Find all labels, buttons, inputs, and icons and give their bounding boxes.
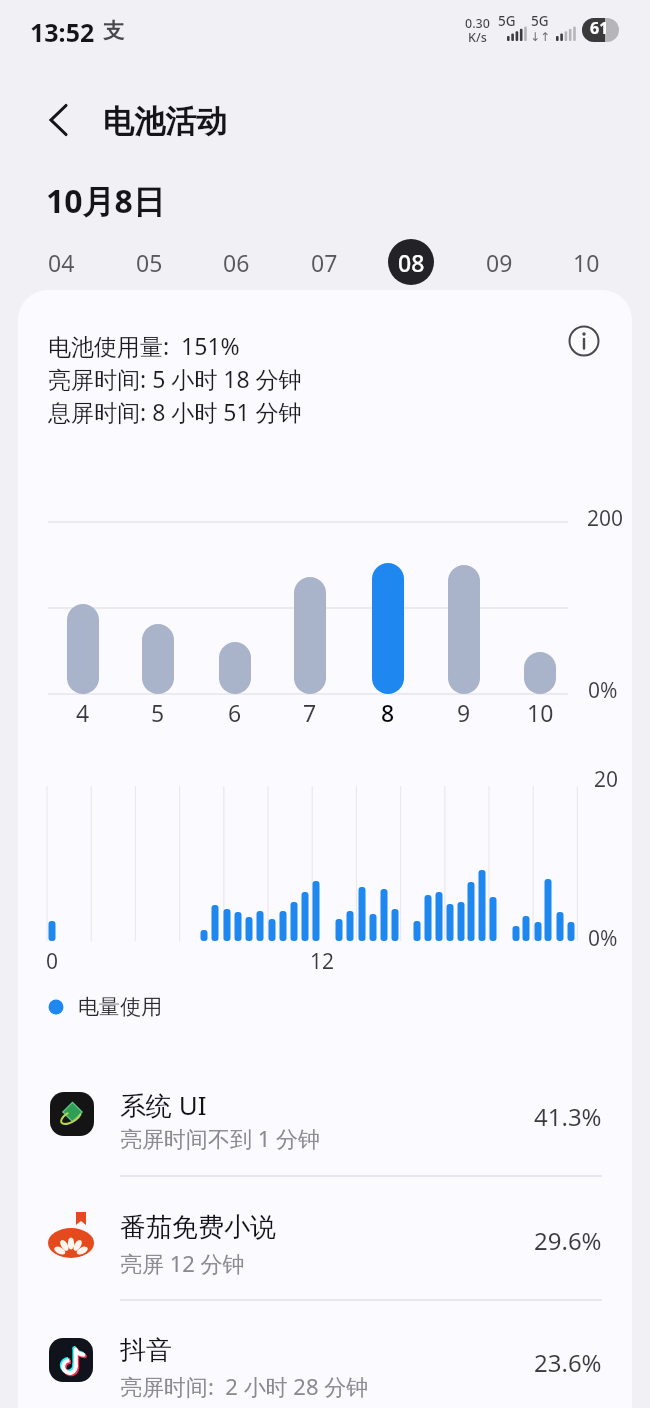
staticText: 09 (486, 247, 513, 278)
staticText: 0% (588, 924, 618, 953)
button[interactable] (18, 1070, 632, 1175)
staticText: 亮屏时间: 5 小时 18 分钟 (48, 363, 302, 394)
staticText: 0% (588, 676, 618, 705)
staticText: 番茄免费小说 (120, 1211, 276, 1244)
button[interactable] (36, 96, 84, 144)
button[interactable] (18, 1188, 632, 1300)
staticText: 20 (594, 765, 619, 794)
staticText: 6 (228, 697, 242, 728)
staticText: 0 (46, 947, 59, 976)
staticText: K/s (468, 29, 487, 46)
staticText: 05 (136, 247, 163, 278)
staticText: 8 (381, 697, 395, 728)
staticText: 07 (311, 247, 338, 278)
staticText: 41.3% (534, 1100, 602, 1133)
staticText: 0.30 (465, 15, 490, 32)
staticText: 抖音 (120, 1334, 172, 1367)
button[interactable]: 08 (388, 239, 434, 285)
staticText: ↓↑ (530, 30, 551, 44)
staticText: 亮屏时间: 2 小时 28 分钟 (120, 1371, 369, 1401)
staticText: 亮屏 12 分钟 (120, 1248, 245, 1278)
staticText: 支 (103, 18, 124, 44)
staticText: 23.6% (534, 1346, 602, 1379)
staticText: 08 (398, 247, 425, 278)
staticText: 4 (76, 697, 90, 728)
staticText: 5 (151, 697, 165, 728)
staticText: 9 (457, 697, 471, 728)
staticText: 12 (310, 947, 335, 976)
staticText: 61 (590, 18, 609, 39)
button[interactable]: 06 (206, 239, 266, 285)
staticText: 7 (303, 697, 317, 728)
staticText: 息屏时间: 8 小时 51 分钟 (48, 396, 302, 427)
button[interactable]: 04 (31, 239, 91, 285)
button[interactable] (18, 1312, 632, 1408)
staticText: 电池活动 (103, 102, 227, 141)
staticText: 10 (573, 247, 600, 278)
staticText: 13:52 (30, 15, 95, 49)
staticText: 5G (531, 12, 549, 30)
button[interactable] (566, 323, 602, 359)
staticText: 5G (498, 12, 516, 30)
staticText: 10 (527, 697, 554, 728)
staticText: 06 (223, 247, 250, 278)
staticText: 10月8日 (46, 179, 165, 223)
button[interactable]: 10 (556, 239, 616, 285)
button[interactable]: 09 (469, 239, 529, 285)
staticText: 04 (48, 247, 75, 278)
button[interactable]: 05 (119, 239, 179, 285)
staticText: 亮屏时间不到 1 分钟 (120, 1123, 321, 1153)
button[interactable]: 07 (294, 239, 354, 285)
staticText: 系统 UI (120, 1087, 207, 1123)
staticText: 200 (587, 504, 624, 533)
staticText: 29.6% (534, 1224, 602, 1257)
staticText: 电量使用 (78, 994, 162, 1020)
staticText: 电池使用量: 151% (48, 330, 240, 361)
